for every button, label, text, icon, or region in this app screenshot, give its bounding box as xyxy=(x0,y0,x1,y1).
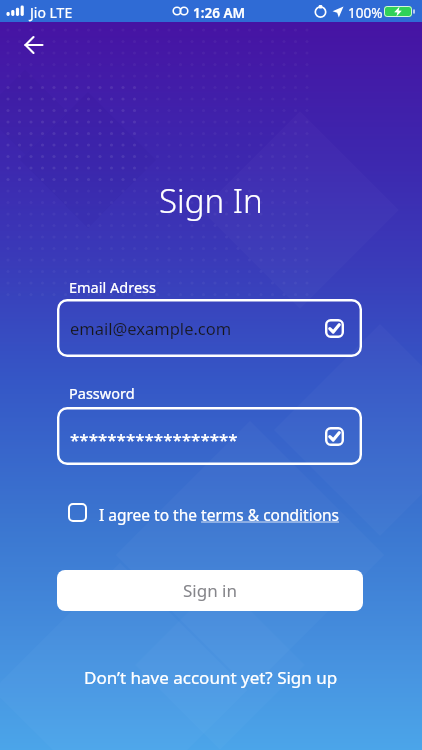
staticText: I agree to the terms & conditions xyxy=(99,504,340,525)
staticText: ****************** xyxy=(70,428,238,451)
staticText: 1:26 AM xyxy=(193,4,246,22)
staticText: Sign In xyxy=(159,178,263,223)
staticText: Don’t have account yet? Sign up xyxy=(84,666,338,689)
staticText: email@example.com xyxy=(70,317,232,339)
staticText: Jio LTE xyxy=(30,3,73,22)
staticText: Password xyxy=(69,383,135,403)
staticText: Email Adress xyxy=(69,277,156,297)
staticText: 100% xyxy=(348,4,383,22)
staticText: Sign in xyxy=(183,579,237,602)
